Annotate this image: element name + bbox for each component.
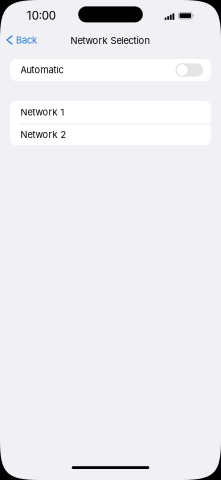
staticText: Network 2: [21, 129, 67, 140]
button[interactable]: Network 1: [10, 101, 211, 123]
staticText: 10:00: [27, 9, 56, 23]
staticText: Network 1: [21, 107, 65, 118]
staticText: Automatic: [21, 64, 64, 75]
staticText: Back: [16, 34, 37, 46]
button[interactable]: Back: [0, 29, 43, 51]
button[interactable]: Automatic: [10, 59, 211, 81]
button[interactable]: Network 2: [10, 124, 211, 145]
staticText: Network Selection: [70, 35, 150, 46]
